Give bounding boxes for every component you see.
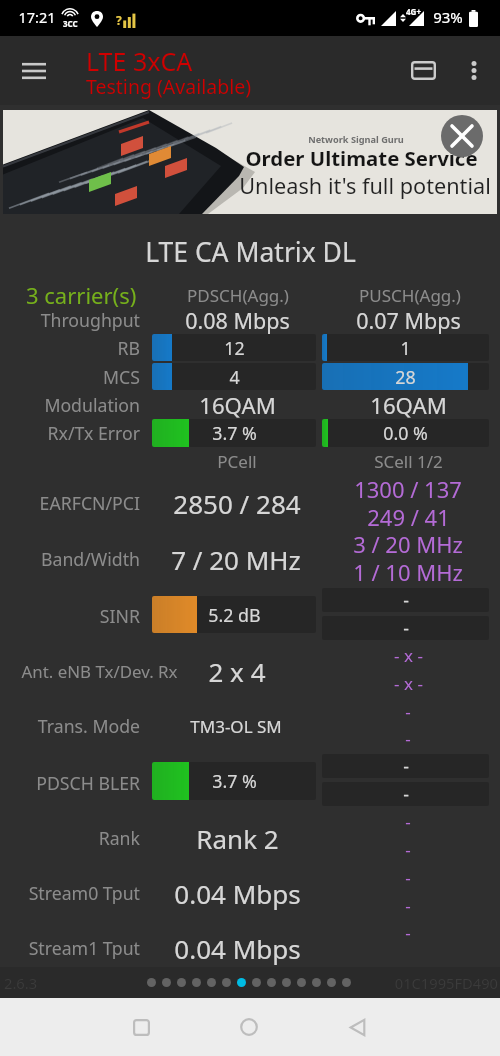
staticText: 0.04 Mbps — [174, 931, 301, 966]
staticText: - x - — [394, 672, 423, 695]
button[interactable]: 0.0 % — [322, 419, 489, 447]
button[interactable]: 4 — [152, 363, 316, 390]
staticText: 16QAM — [199, 390, 276, 420]
staticText: - — [405, 838, 411, 861]
staticText: 1 / 10 MHz — [353, 557, 463, 587]
staticText: SINR — [99, 604, 140, 628]
button[interactable]: 3.7 % — [152, 762, 316, 800]
staticText: - — [405, 921, 411, 944]
staticText: 3.7 % — [212, 769, 257, 793]
staticText: Order Ultimate Service — [245, 144, 478, 172]
staticText: Rx/Tx Error — [47, 421, 140, 445]
staticText: Stream1 Tput — [28, 936, 140, 960]
staticText: MCS — [103, 365, 140, 389]
staticText: 3.7 % — [212, 421, 257, 445]
staticText: PDSCH(Agg.) — [187, 284, 289, 307]
staticText: LTE CA Matrix DL — [145, 234, 356, 270]
staticText: 249 / 41 — [367, 502, 450, 532]
staticText: Band/Width — [40, 547, 140, 571]
staticText: 0.07 Mbps — [356, 306, 461, 335]
button[interactable]: Back — [329, 998, 385, 1056]
button[interactable]: - — [322, 754, 489, 778]
staticText: 4G+ — [406, 6, 421, 17]
staticText: Trans. Mode — [37, 714, 140, 738]
staticText: - — [403, 782, 409, 806]
button[interactable]: Home — [221, 998, 277, 1056]
staticText: Testing (Available) — [86, 73, 252, 100]
button[interactable]: Page 12 — [312, 978, 321, 987]
staticText: 1 — [400, 336, 411, 360]
button[interactable]: 28 — [322, 363, 489, 390]
staticText: Unleash it's full potential — [239, 171, 491, 201]
staticText: 3 carrier(s) — [26, 280, 137, 310]
staticText: 28 — [395, 365, 416, 389]
staticText: PCell — [217, 450, 257, 473]
staticText: 4 — [229, 365, 240, 389]
button[interactable]: - — [322, 616, 489, 640]
staticText: - — [405, 810, 411, 833]
button[interactable]: Network Signal Guru — [3, 110, 497, 214]
staticText: - — [405, 700, 411, 723]
button[interactable]: Close advertisement — [441, 115, 483, 157]
staticText: - — [403, 616, 409, 640]
staticText: TM3-OL SM — [190, 715, 282, 738]
button[interactable]: Page 3 — [177, 978, 186, 987]
button[interactable]: Page 1 — [147, 978, 156, 987]
staticText: - — [403, 588, 409, 612]
staticText: LTE 3xCA — [86, 44, 193, 72]
staticText: Modulation — [44, 393, 140, 417]
button[interactable]: More options — [452, 36, 496, 105]
button[interactable]: Recent apps — [113, 998, 169, 1056]
button[interactable]: Page 10 — [282, 978, 291, 987]
button[interactable]: - — [322, 588, 489, 612]
button[interactable]: Page 4 — [192, 978, 201, 987]
staticText: - — [405, 866, 411, 889]
button[interactable]: Page 7 — [237, 978, 246, 987]
staticText: PUSCH(Agg.) — [359, 284, 461, 307]
staticText: - — [405, 727, 411, 750]
staticText: RB — [117, 336, 140, 360]
button[interactable]: Page 6 — [222, 978, 231, 987]
button[interactable]: Page 11 — [297, 978, 306, 987]
staticText: Ant. eNB Tx/Dev. Rx — [21, 660, 178, 683]
staticText: 93% — [433, 7, 463, 27]
staticText: Throughput — [40, 308, 140, 332]
button[interactable]: Page 8 — [252, 978, 261, 987]
staticText: 12 — [224, 336, 245, 360]
staticText: 17:21 — [18, 7, 56, 27]
button[interactable]: 3.7 % — [152, 419, 316, 447]
staticText: 2850 / 284 — [173, 486, 301, 521]
button[interactable]: Page 13 — [327, 978, 336, 987]
staticText: Rank 2 — [196, 821, 279, 856]
button[interactable]: 5.2 dB — [152, 596, 316, 633]
staticText: Network Signal Guru — [308, 133, 404, 146]
staticText: 0.04 Mbps — [174, 876, 301, 911]
button[interactable]: 1 — [322, 334, 489, 361]
button[interactable]: Navigation menu — [8, 36, 60, 105]
staticText: 01C1995FD490 — [394, 973, 498, 993]
staticText: - x - — [394, 644, 423, 667]
staticText: 0.08 Mbps — [185, 306, 290, 335]
staticText: 2 x 4 — [208, 654, 266, 689]
staticText: 3 / 20 MHz — [353, 529, 463, 559]
button[interactable]: - — [322, 782, 489, 806]
staticText: ? — [116, 12, 122, 28]
staticText: Rank — [98, 826, 140, 850]
staticText: - — [403, 754, 409, 778]
staticText: - — [405, 894, 411, 917]
staticText: SCell 1/2 — [374, 450, 443, 473]
staticText: Stream0 Tput — [28, 881, 140, 905]
staticText: 16QAM — [370, 390, 447, 420]
staticText: EARFCN/PCI — [39, 491, 140, 515]
staticText: 2.6.3 — [4, 973, 38, 993]
button[interactable]: Page 2 — [162, 978, 171, 987]
button[interactable]: Page 5 — [207, 978, 216, 987]
button[interactable]: Page 9 — [267, 978, 276, 987]
staticText: 5.2 dB — [208, 603, 261, 627]
staticText: 7 / 20 MHz — [171, 542, 301, 577]
staticText: 3CC — [63, 18, 78, 29]
button[interactable]: Layout view — [398, 36, 448, 105]
button[interactable]: Page 14 — [342, 978, 351, 987]
button[interactable]: 12 — [152, 334, 316, 361]
staticText: 1300 / 137 — [354, 474, 462, 504]
